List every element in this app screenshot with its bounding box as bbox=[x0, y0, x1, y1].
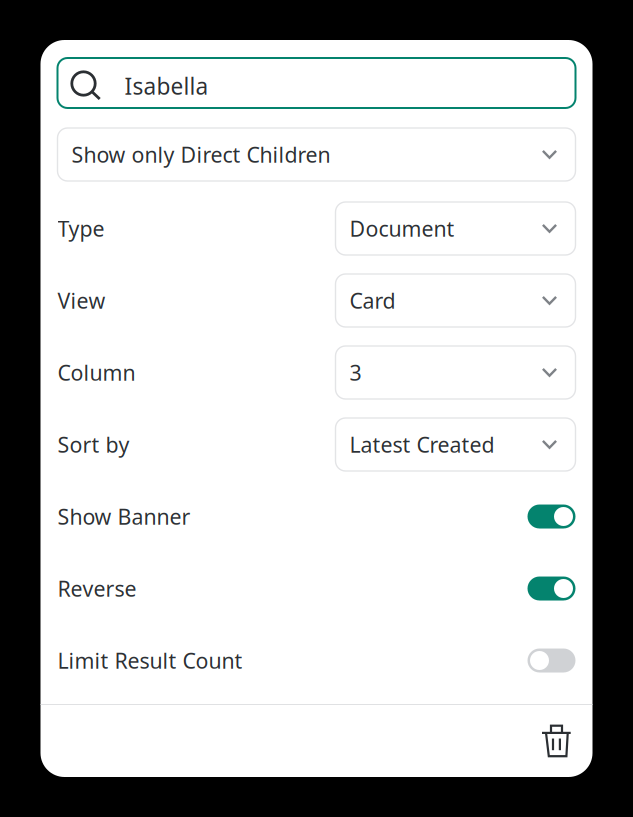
staticText: Document bbox=[349, 214, 454, 243]
button[interactable]: Delete bbox=[532, 717, 580, 765]
button[interactable]: 3 bbox=[335, 346, 575, 399]
button[interactable]: Isabella bbox=[57, 58, 575, 109]
button[interactable]: Reverse bbox=[57, 562, 575, 615]
staticText: Show only Direct Children bbox=[71, 140, 330, 169]
staticText: Isabella bbox=[124, 71, 208, 101]
staticText: Card bbox=[349, 286, 395, 315]
button[interactable]: Show Banner bbox=[57, 490, 575, 543]
staticText: Latest Created bbox=[349, 430, 494, 459]
staticText: Sort by bbox=[57, 430, 129, 459]
staticText: Show Banner bbox=[57, 502, 190, 531]
staticText: Reverse bbox=[57, 574, 136, 603]
button[interactable]: Card bbox=[335, 274, 575, 327]
staticText: View bbox=[57, 286, 105, 315]
staticText: Column bbox=[57, 358, 135, 387]
button[interactable]: Limit Result Count bbox=[57, 634, 575, 687]
staticText: 3 bbox=[349, 358, 361, 387]
staticText: Limit Result Count bbox=[57, 646, 242, 675]
button[interactable]: Show only Direct Children bbox=[57, 128, 575, 181]
staticText: Type bbox=[57, 214, 104, 243]
button[interactable]: Latest Created bbox=[335, 418, 575, 471]
button[interactable]: Document bbox=[335, 202, 575, 255]
